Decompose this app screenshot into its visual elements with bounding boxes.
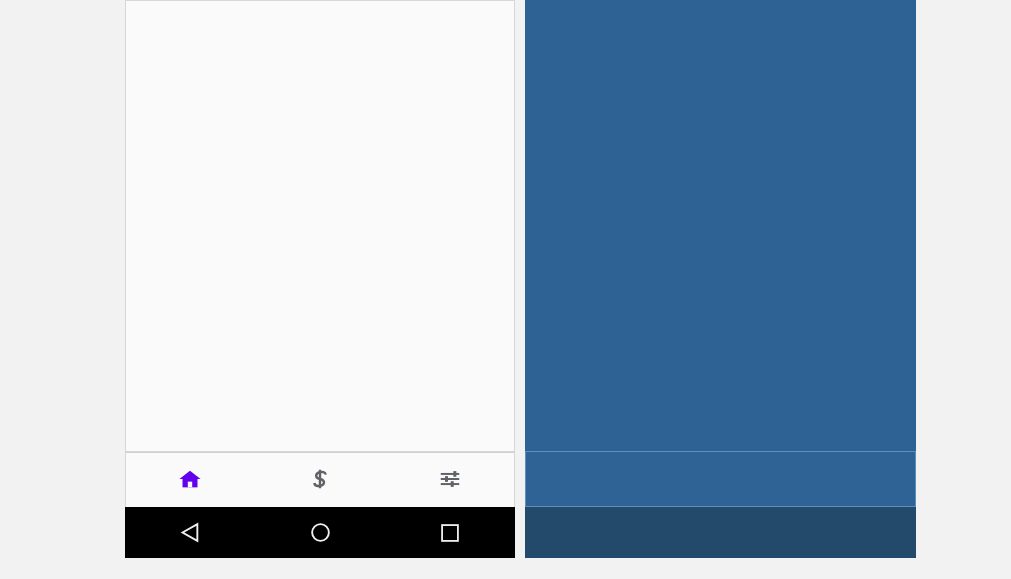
button[interactable]: Home: [125, 452, 255, 507]
button[interactable]: Home: [255, 507, 385, 558]
button[interactable]: Recents: [385, 507, 515, 558]
button[interactable]: Back: [125, 507, 255, 558]
button[interactable]: Settings: [385, 452, 515, 507]
button[interactable]: Payments: [255, 452, 385, 507]
